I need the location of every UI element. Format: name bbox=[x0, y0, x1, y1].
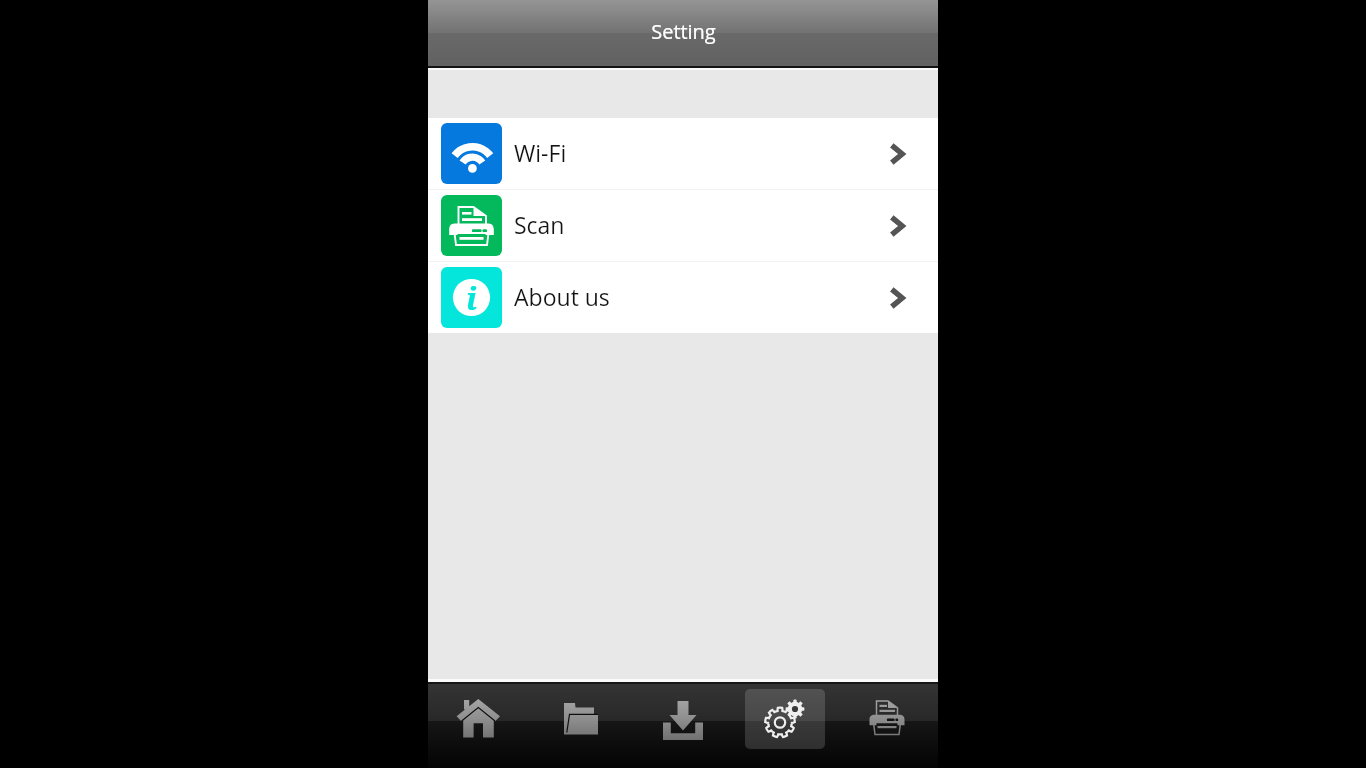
staticText: Wi-Fi bbox=[514, 137, 567, 168]
button[interactable]: i bbox=[428, 262, 938, 333]
button[interactable]: Scan bbox=[428, 190, 938, 261]
button[interactable]: Wi-Fi bbox=[428, 118, 938, 189]
button[interactable]: Files bbox=[541, 689, 621, 749]
button[interactable]: Downloads bbox=[643, 689, 723, 749]
button[interactable]: Home bbox=[439, 689, 519, 749]
staticText: About us bbox=[514, 281, 610, 312]
staticText: Scan bbox=[514, 209, 565, 240]
button[interactable]: Settings bbox=[745, 689, 825, 749]
staticText: i bbox=[466, 277, 477, 319]
button[interactable]: Print bbox=[847, 689, 927, 749]
staticText: Setting bbox=[651, 18, 716, 45]
